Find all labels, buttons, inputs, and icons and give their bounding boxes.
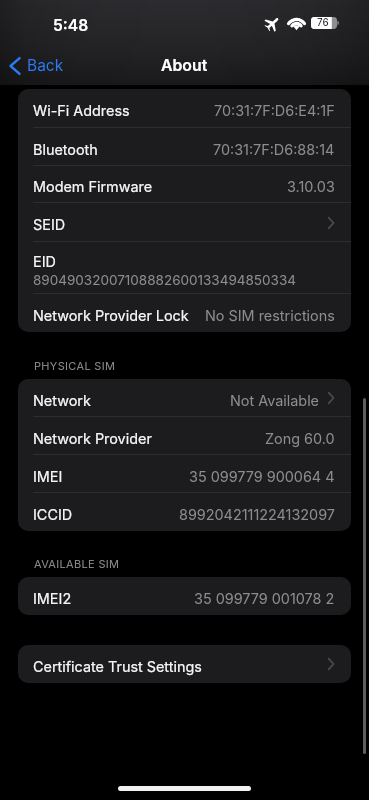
staticText: SEID bbox=[33, 216, 66, 233]
staticText: 76 bbox=[317, 17, 329, 29]
staticText: IMEI bbox=[33, 468, 63, 485]
staticText: Network Provider Lock bbox=[33, 307, 189, 324]
staticText: 70:31:7F:D6:88:14 bbox=[213, 141, 335, 158]
button[interactable]: Network Provider Lock bbox=[18, 294, 351, 332]
staticText: Network bbox=[33, 392, 91, 409]
staticText: 70:31:7F:D6:E4:1F bbox=[214, 102, 335, 119]
staticText: Bluetooth bbox=[33, 141, 98, 158]
staticText: 5:48 bbox=[53, 16, 89, 35]
staticText: 89049032007108882600133494850334 bbox=[33, 272, 296, 288]
staticText: 35 099779 001078 2 bbox=[194, 590, 335, 607]
staticText: IMEI2 bbox=[33, 590, 72, 607]
button[interactable]: Wi-Fi Address bbox=[18, 89, 351, 128]
staticText: 8992042111224132097 bbox=[179, 506, 335, 523]
staticText: Zong 60.0 bbox=[265, 430, 335, 447]
other: Wi-Fi bbox=[288, 17, 305, 29]
staticText: PHYSICAL SIM bbox=[34, 359, 116, 371]
staticText: ICCID bbox=[33, 506, 73, 523]
staticText: 35 099779 900064 4 bbox=[189, 468, 335, 485]
button[interactable]: EID bbox=[18, 242, 351, 294]
button[interactable]: IMEI2 bbox=[18, 577, 351, 615]
button[interactable]: Bluetooth bbox=[18, 128, 351, 166]
staticText: Wi-Fi Address bbox=[33, 102, 130, 119]
staticText: AVAILABLE SIM bbox=[34, 557, 120, 569]
button[interactable]: SEID bbox=[18, 203, 351, 242]
button[interactable]: IMEI bbox=[18, 455, 351, 493]
button[interactable]: Back bbox=[0, 51, 74, 80]
button[interactable]: ICCID bbox=[18, 493, 351, 531]
other: Airplane mode bbox=[265, 16, 280, 31]
staticText: EID bbox=[33, 253, 56, 270]
button[interactable]: Certificate Trust Settings bbox=[18, 645, 351, 683]
button[interactable]: Network Provider bbox=[18, 417, 351, 455]
staticText: 3.10.03 bbox=[287, 178, 335, 195]
button[interactable]: Modem Firmware bbox=[18, 166, 351, 203]
other: Battery 76 percent bbox=[311, 17, 339, 29]
staticText: Not Available bbox=[230, 392, 320, 409]
staticText: Network Provider bbox=[33, 430, 152, 447]
button[interactable]: Network bbox=[18, 379, 351, 417]
staticText: Certificate Trust Settings bbox=[33, 658, 202, 675]
staticText: Modem Firmware bbox=[33, 178, 153, 195]
staticText: No SIM restrictions bbox=[205, 307, 335, 324]
staticText: About bbox=[161, 56, 208, 75]
staticText: Back bbox=[27, 56, 64, 75]
